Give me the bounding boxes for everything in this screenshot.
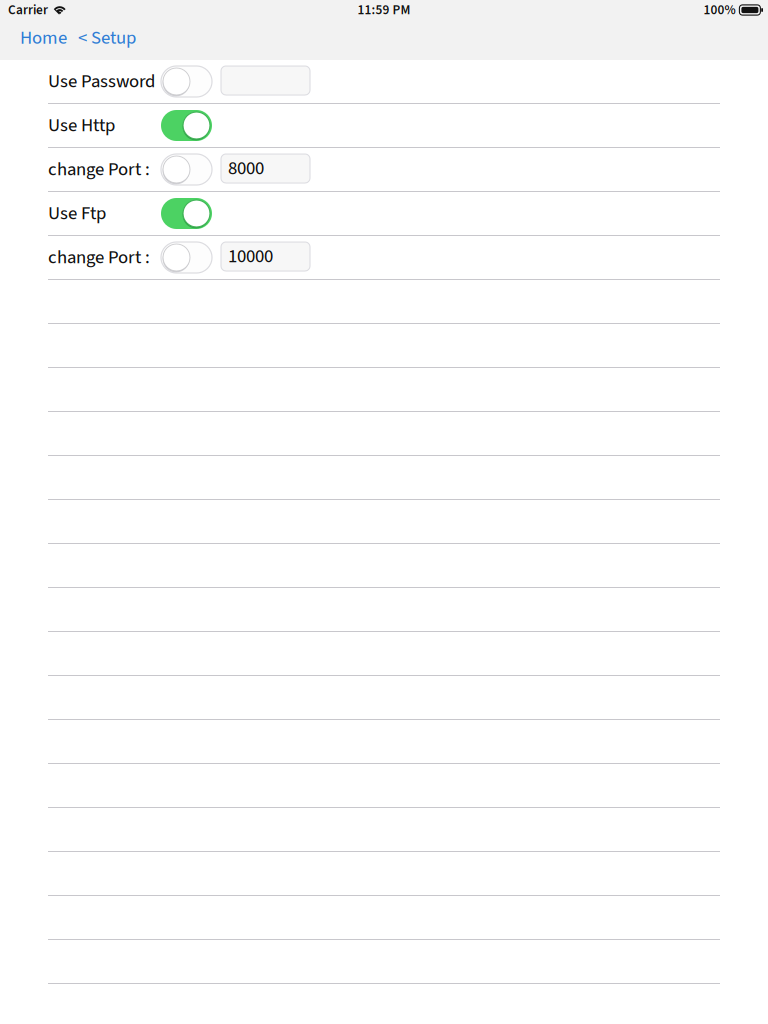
staticText: Use Http [48,112,115,139]
staticText: 8000 [228,155,264,182]
button[interactable]: < Setup [78,25,136,51]
button[interactable]: Password [221,66,310,95]
button[interactable]: change Port : [161,154,212,185]
staticText: change Port : [48,244,154,271]
staticText: < Setup [78,25,136,51]
button[interactable]: Use Password [161,66,212,97]
staticText: 11:59 PM [357,0,410,19]
staticText: 100% [703,0,735,19]
button[interactable]: Home [20,25,67,51]
staticText: Carrier [8,0,48,19]
button[interactable]: change Port : [161,242,212,273]
staticText: Home [20,25,67,51]
button[interactable]: Use Ftp [161,198,212,229]
button[interactable]: Port number [221,154,310,183]
staticText: Use Ftp [48,200,106,227]
staticText: Use Password [48,68,155,95]
button[interactable]: Use Http [161,110,212,141]
staticText: change Port : [48,156,154,183]
staticText: 10000 [228,243,273,270]
button[interactable]: Port number [221,242,310,271]
